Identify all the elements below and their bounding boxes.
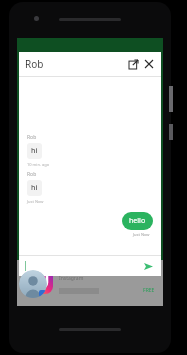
staticText: 10 min. ago [27,162,50,167]
staticText: Rob [25,57,44,71]
button[interactable]: Open in new [125,56,141,72]
button[interactable]: Chat head [19,270,47,298]
button[interactable]: hi [27,180,42,196]
staticText: hi [31,146,38,156]
staticText: Instagram [59,275,84,282]
staticText: hi [31,183,38,193]
staticText: hello [129,216,146,226]
staticText: Just Now [133,232,150,237]
button[interactable]: Send [141,259,155,273]
button[interactable]: Send [25,256,155,276]
button[interactable]: Close [141,56,157,72]
button[interactable]: hello [122,212,153,230]
staticText: Rob [27,134,37,141]
staticText: FREE [143,287,155,294]
staticText: Just Now [27,199,44,204]
staticText: Rob [27,171,37,178]
button[interactable]: hi [27,143,42,159]
